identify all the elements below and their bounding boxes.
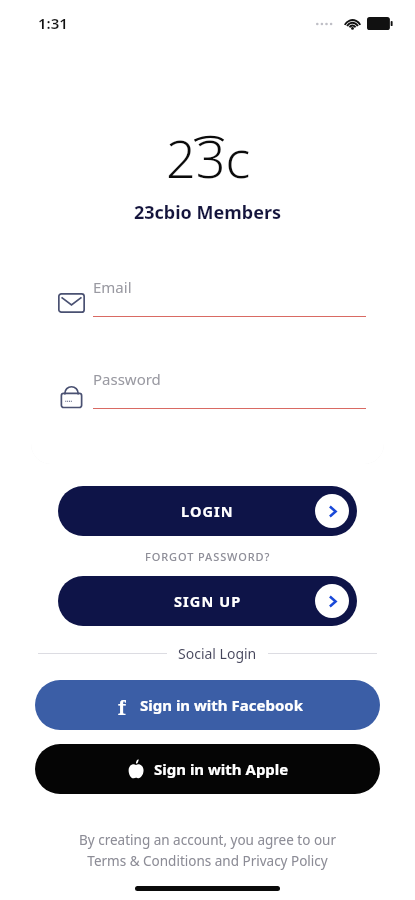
- button[interactable]: By creating an account, you agree to our…: [0, 831, 415, 870]
- staticText: Password: [93, 369, 161, 389]
- staticText: Social Login: [178, 644, 257, 663]
- staticText: 1:31: [38, 13, 68, 33]
- staticText: Sign in with Apple: [154, 759, 289, 779]
- staticText: 23cbio Members: [0, 200, 415, 225]
- button[interactable]: FORGOT PASSWORD?: [0, 546, 415, 567]
- staticText: Email: [93, 277, 132, 297]
- staticText: 23c: [166, 122, 251, 184]
- staticText: Sign in with Facebook: [140, 695, 303, 715]
- staticText: LOGIN: [181, 501, 234, 521]
- button[interactable]: Sign in with Apple: [35, 744, 380, 794]
- staticText: SIGN UP: [174, 591, 242, 611]
- button[interactable]: Sign in with Facebook: [35, 680, 380, 730]
- staticText: FORGOT PASSWORD?: [145, 549, 271, 564]
- button[interactable]: SIGN UP: [58, 576, 357, 626]
- staticText: f: [118, 695, 126, 715]
- button[interactable]: LOGIN: [58, 486, 357, 536]
